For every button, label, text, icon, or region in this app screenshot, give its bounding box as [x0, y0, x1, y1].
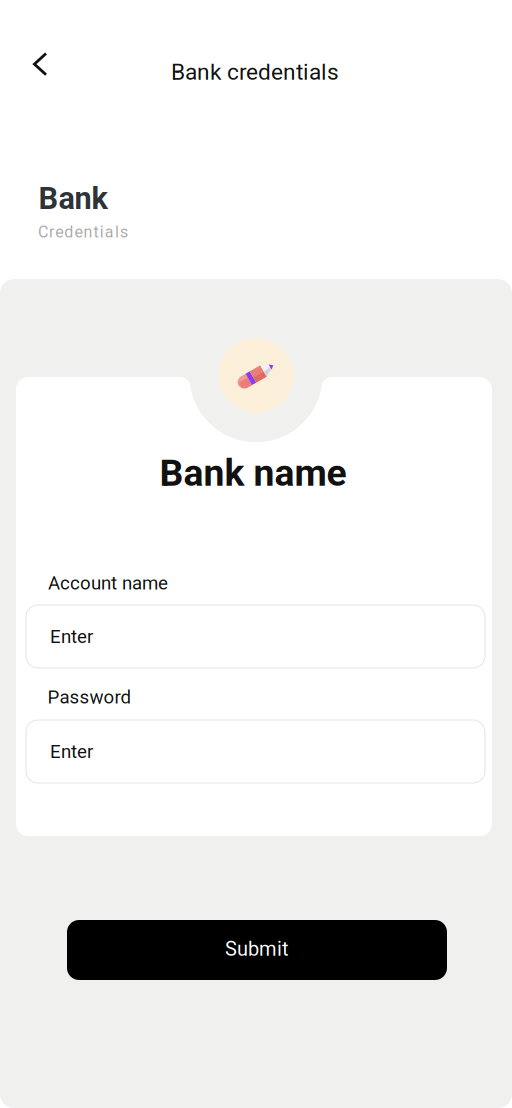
staticText: Bank [38, 180, 107, 216]
staticText: Enter [50, 626, 93, 647]
staticText: Enter [50, 741, 93, 762]
button[interactable]: Submit [67, 920, 447, 980]
staticText: Account name [48, 572, 168, 594]
button[interactable]: Enter [26, 605, 485, 668]
button[interactable]: Back [18, 42, 62, 86]
staticText: Password [47, 686, 131, 708]
button[interactable]: Enter [26, 720, 485, 783]
staticText: Bank credentials [171, 59, 339, 85]
staticText: Credentials [38, 223, 128, 241]
staticText: Submit [225, 937, 289, 961]
staticText: Bank name [159, 451, 346, 495]
